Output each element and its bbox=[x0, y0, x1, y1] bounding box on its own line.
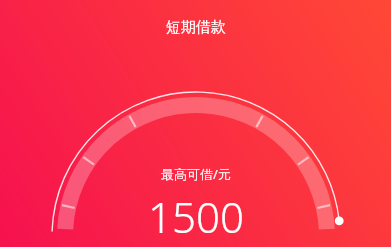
staticText: 短期借款 bbox=[166, 18, 226, 37]
staticText: 最高可借/元 bbox=[161, 165, 231, 183]
staticText: 1500 bbox=[148, 188, 244, 245]
